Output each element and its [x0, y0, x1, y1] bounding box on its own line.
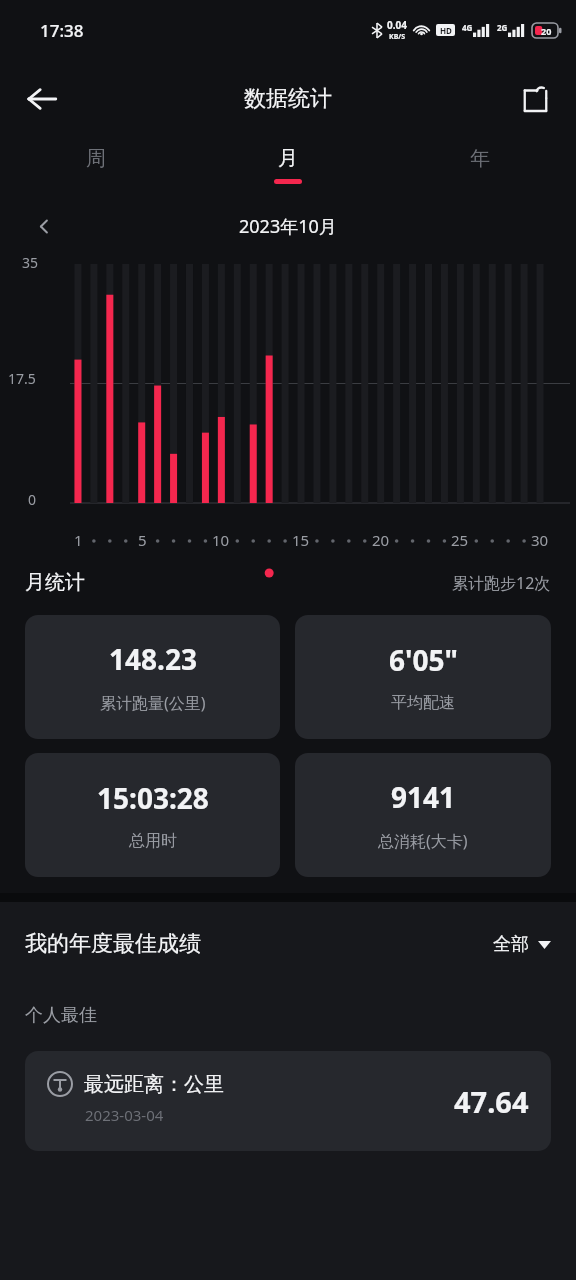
staticText: 10 [212, 530, 230, 550]
staticText: 47.64 [454, 1082, 529, 1121]
staticText: 17:38 [40, 19, 84, 42]
staticText: 25 [451, 530, 469, 550]
button[interactable]: 月 [192, 138, 384, 202]
staticText: 全部 [493, 933, 529, 956]
staticText: 数据统计 [244, 85, 332, 113]
staticText: 平均配速 [391, 693, 455, 713]
button[interactable]: Previous month [24, 206, 64, 246]
staticText: 6'05" [389, 641, 458, 679]
staticText: 个人最佳 [25, 1004, 97, 1027]
staticText: 1 [74, 530, 83, 550]
staticText: 17.5 [8, 369, 36, 388]
button[interactable]: 15:03:28 [25, 753, 280, 877]
staticText: 5 [138, 530, 147, 550]
staticText: 15 [292, 530, 310, 550]
staticText: 月 [278, 146, 298, 171]
staticText: 年 [470, 146, 490, 171]
staticText: 累计跑步12次 [452, 572, 551, 594]
staticText: 周 [86, 146, 106, 171]
staticText: 0 [28, 490, 37, 509]
staticText: 30 [531, 530, 549, 550]
button[interactable]: 148.23 [25, 615, 280, 739]
staticText: 总消耗(大卡) [378, 830, 468, 852]
staticText: 月统计 [25, 570, 85, 595]
staticText: 2023-03-04 [85, 1105, 164, 1125]
button[interactable]: Share [508, 72, 562, 126]
button[interactable]: 全部 [493, 933, 551, 956]
button[interactable]: 最远距离：公里 [25, 1051, 551, 1151]
button[interactable]: 9141 [295, 753, 551, 877]
staticText: 20 [541, 25, 552, 37]
staticText: 4G [462, 22, 473, 33]
staticText: HD [440, 25, 452, 36]
button[interactable]: 年 [384, 138, 576, 202]
button[interactable]: 6'05" [295, 615, 551, 739]
staticText: 35 [22, 253, 39, 272]
staticText: 总用时 [129, 831, 177, 851]
staticText: 148.23 [109, 640, 197, 678]
staticText: 15:03:28 [97, 779, 209, 817]
staticText: 最远距离：公里 [84, 1072, 224, 1097]
button[interactable]: 周 [0, 138, 192, 202]
staticText: 20 [372, 530, 390, 550]
button[interactable]: Back [12, 69, 72, 129]
staticText: 2023年10月 [239, 214, 337, 239]
staticText: KB/S [389, 32, 406, 42]
staticText: 我的年度最佳成绩 [25, 930, 201, 958]
staticText: 累计跑量(公里) [100, 692, 206, 714]
staticText: 2G [497, 22, 508, 33]
staticText: 0.04 [387, 18, 407, 32]
staticText: 9141 [391, 778, 456, 816]
